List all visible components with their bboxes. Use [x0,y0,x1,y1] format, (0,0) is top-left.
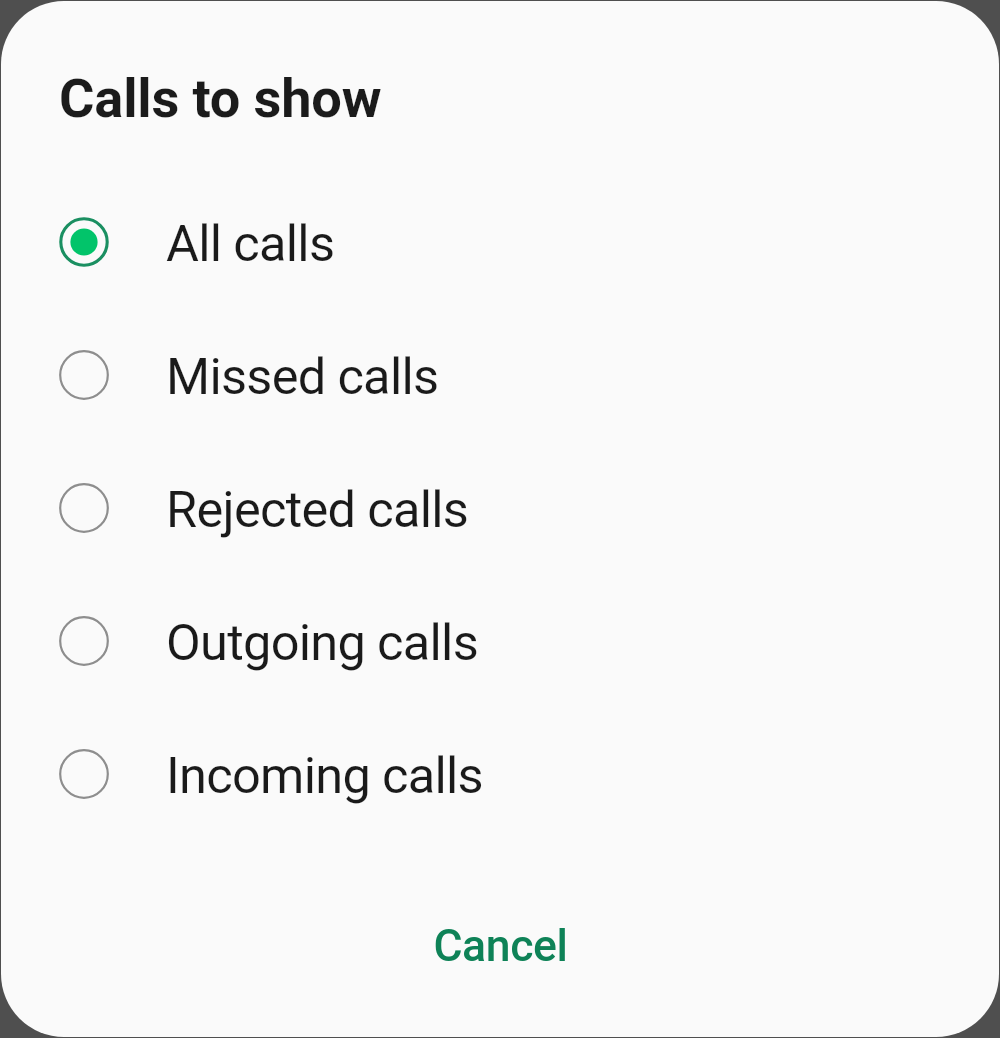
staticText: Cancel [433,920,568,972]
staticText: Calls to show [59,67,382,131]
staticText: Incoming calls [166,746,483,805]
button[interactable]: Cancel [393,906,608,986]
button[interactable]: Missed calls, not selected [1,308,999,441]
button[interactable]: Outgoing calls, not selected [1,574,999,707]
staticText: Rejected calls [166,480,469,539]
button[interactable]: Rejected calls, not selected [1,441,999,574]
button[interactable]: Incoming calls, not selected [1,707,999,840]
staticText: Outgoing calls [166,613,479,672]
other: Outgoing calls, not selected [59,616,109,666]
staticText: All calls [166,214,335,273]
other: Incoming calls, not selected [59,749,109,799]
other: All calls, selected [59,217,109,267]
staticText: Missed calls [166,347,439,406]
button[interactable]: All calls, selected [1,175,999,308]
other: Rejected calls, not selected [59,483,109,533]
other: Missed calls, not selected [59,350,109,400]
